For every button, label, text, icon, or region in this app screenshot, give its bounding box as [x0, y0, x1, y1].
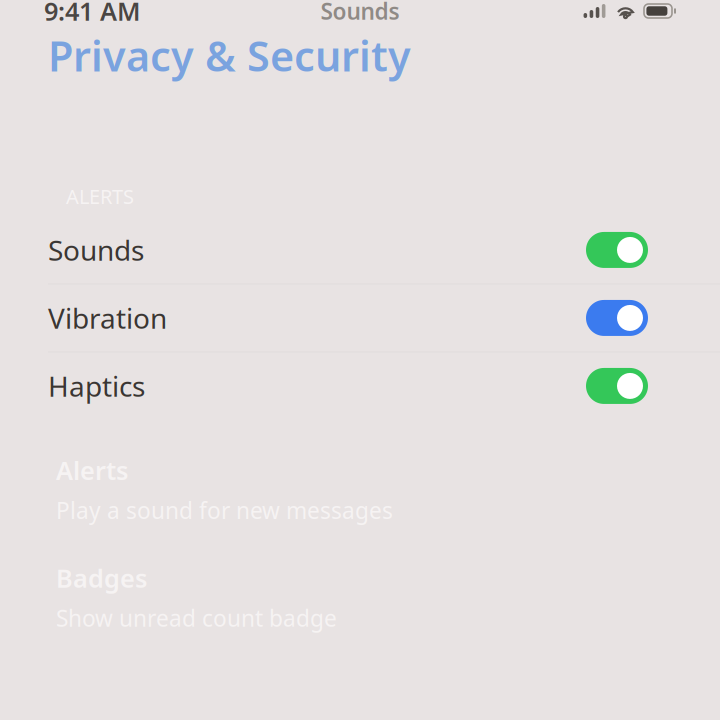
staticText: Alerts: [56, 453, 128, 487]
staticText: Play a sound for new messages: [56, 495, 393, 525]
staticText: Vibration: [48, 299, 167, 337]
staticText: Show unread count badge: [56, 603, 337, 633]
staticText: ALERTS: [66, 183, 134, 209]
button[interactable]: Haptics: [0, 352, 720, 419]
staticText: Haptics: [48, 367, 145, 405]
button[interactable]: Wi-Fi: [616, 4, 635, 18]
button[interactable]: Cellular signal: [582, 4, 607, 18]
staticText: Sounds: [48, 231, 144, 269]
button[interactable]: Battery: [644, 4, 676, 18]
staticText: 9:41 AM: [44, 0, 141, 28]
staticText: Sounds: [320, 0, 399, 26]
staticText: Badges: [56, 561, 147, 595]
button[interactable]: Vibration: [0, 284, 720, 351]
button[interactable]: Sounds: [0, 216, 720, 283]
staticText: Privacy & Security: [48, 28, 411, 83]
